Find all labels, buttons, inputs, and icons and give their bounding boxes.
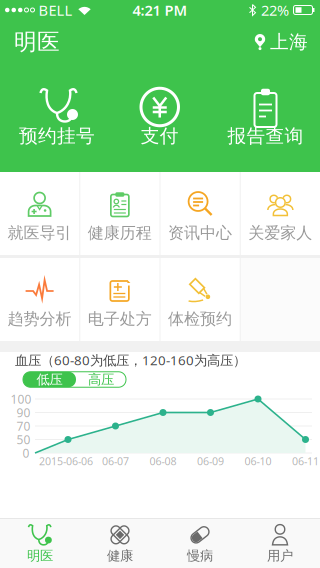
staticText: 低压 [36,371,62,388]
button[interactable]: 关爱家人 [241,172,320,255]
button[interactable]: 用户 [240,519,320,568]
staticText: 健康 [107,548,133,564]
staticText: 2015-06-06 [39,454,93,468]
button[interactable]: 上海 [254,30,320,53]
staticText: 趋势分析 [8,309,72,329]
button[interactable]: 支付 [106,64,213,172]
staticText: 06-11 [292,454,319,468]
staticText: 关爱家人 [248,223,312,243]
staticText: BELL [38,0,72,20]
button[interactable]: 高压 [76,372,126,387]
button[interactable]: 健康历程 [80,172,159,255]
button[interactable]: 慢病 [160,519,240,568]
button[interactable]: 趋势分析 [0,258,79,341]
staticText: 70 [16,418,30,434]
staticText: 06-08 [149,454,176,468]
staticText: 健康历程 [88,223,152,243]
staticText: 06-09 [197,454,224,468]
staticText: 0 [22,445,29,461]
staticText: 100 [10,391,31,407]
button[interactable]: 报告查询 [213,64,319,172]
staticText: 06-07 [102,454,129,468]
button[interactable]: 电子处方 [80,258,159,341]
button[interactable]: 资讯中心 [160,172,240,255]
button[interactable]: 体检预约 [160,258,240,341]
staticText: 22% [261,0,289,20]
staticText: 高压 [88,371,114,388]
staticText: 支付 [141,124,179,147]
button[interactable]: 低压 [23,372,76,387]
staticText: 报告查询 [227,124,303,147]
button[interactable]: 就医导引 [0,172,79,255]
button[interactable]: 明医 [0,519,80,568]
staticText: 用户 [267,548,293,564]
staticText: 明医 [27,548,53,564]
button[interactable]: 健康 [80,519,160,568]
staticText: 就医导引 [8,223,72,243]
staticText: 血压（60-80为低压，120-160为高压） [15,351,246,369]
staticText: 06-10 [244,454,271,468]
staticText: 明医 [14,28,60,56]
staticText: 体检预约 [168,309,232,329]
staticText: 上海 [270,30,308,53]
staticText: 电子处方 [88,309,152,329]
staticText: 预约挂号 [19,124,95,147]
staticText: 4:21 PM [132,0,187,20]
staticText: 50 [16,431,30,447]
button[interactable]: 预约挂号 [0,64,106,172]
staticText: 慢病 [187,548,213,564]
staticText: 90 [16,404,30,420]
staticText: 资讯中心 [168,223,232,243]
